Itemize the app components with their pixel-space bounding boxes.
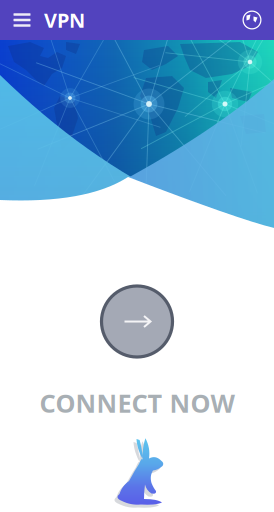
button[interactable]: Servers [230,0,274,40]
button[interactable]: Menu [0,0,44,40]
staticText: CONNECT NOW [39,386,234,420]
button[interactable]: Connect [93,277,181,365]
staticText: VPN [44,7,85,33]
